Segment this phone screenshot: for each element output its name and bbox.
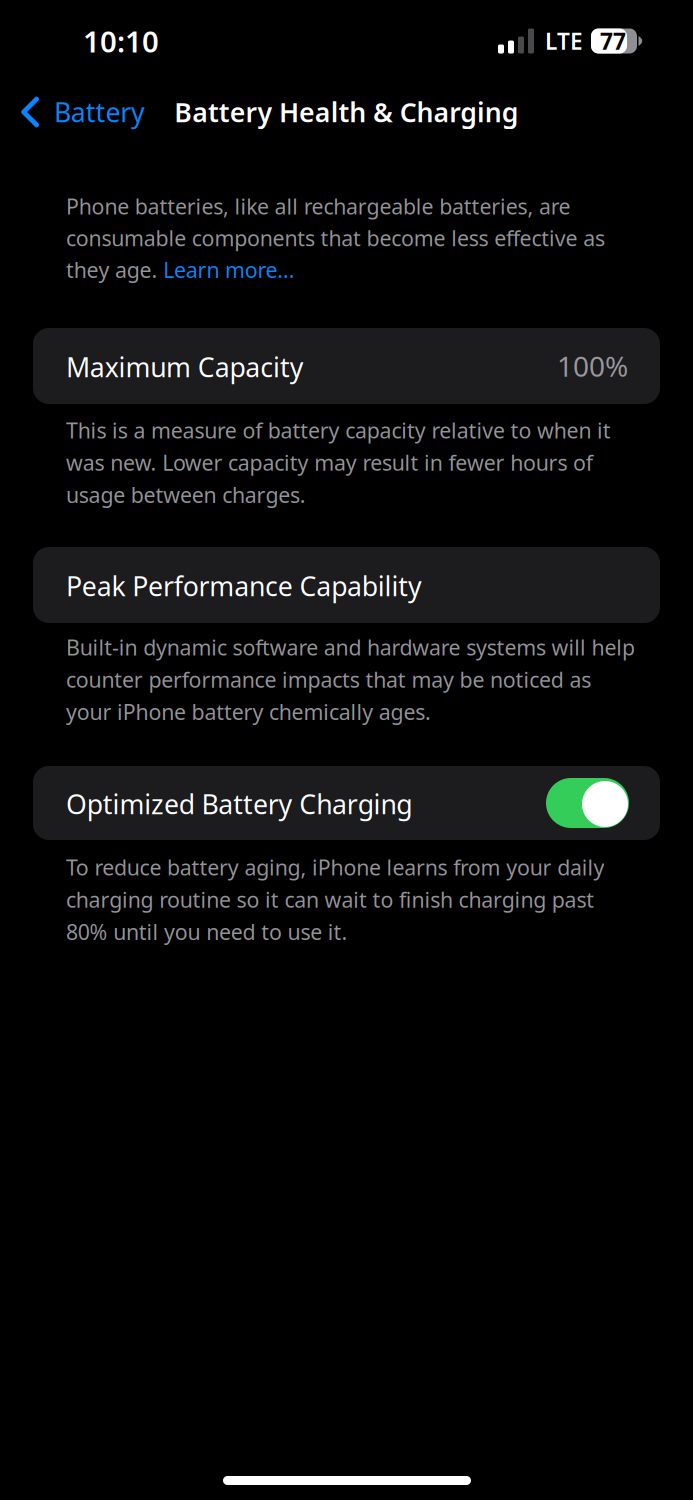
button[interactable]: Optimized Battery Charging, on (33, 766, 660, 840)
button[interactable]: Learn more... (163, 256, 295, 284)
staticText: they age. (66, 256, 163, 284)
staticText: Peak Performance Capability (66, 568, 422, 604)
staticText: 77 (600, 26, 626, 56)
staticText: 10:10 (83, 21, 159, 60)
staticText: To reduce battery aging, iPhone learns f… (66, 853, 604, 946)
staticText: Built-in dynamic software and hardware s… (66, 633, 635, 726)
staticText: Optimized Battery Charging (66, 786, 412, 822)
staticText: LTE (545, 26, 583, 56)
button[interactable]: Battery (0, 84, 180, 140)
staticText: Learn more... (163, 256, 295, 284)
staticText: Battery Health & Charging (174, 94, 519, 130)
staticText: 100% (557, 347, 628, 385)
button[interactable]: Peak Performance Capability (33, 547, 660, 623)
staticText: Maximum Capacity (66, 349, 304, 385)
staticText: This is a measure of battery capacity re… (66, 416, 611, 509)
staticText: consumable components that become less e… (66, 224, 605, 252)
staticText: Battery (54, 94, 145, 130)
button[interactable]: Maximum Capacity (33, 328, 660, 404)
staticText: Phone batteries, like all rechargeable b… (66, 192, 571, 220)
